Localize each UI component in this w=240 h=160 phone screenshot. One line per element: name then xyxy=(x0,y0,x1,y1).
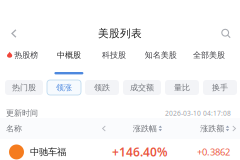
staticText: 热门股 xyxy=(12,83,36,92)
staticText: 中概股 xyxy=(57,50,81,60)
button[interactable]: 中概股 xyxy=(54,45,83,75)
button[interactable]: 换手 xyxy=(203,80,237,95)
staticText: 热股榜 xyxy=(14,50,38,60)
staticText: 涨跌额 xyxy=(200,124,224,133)
staticText: 科技股 xyxy=(102,50,126,60)
staticText: 成交额 xyxy=(130,83,154,92)
staticText: 名称 xyxy=(6,124,22,133)
staticText: 中驰车福 xyxy=(30,146,66,158)
staticText: 全部美股 xyxy=(193,50,225,60)
staticText: 量比 xyxy=(174,83,190,92)
staticText: 换手 xyxy=(212,83,228,92)
staticText: 领跌 xyxy=(94,83,110,92)
button[interactable]: 领涨 xyxy=(47,80,81,95)
button[interactable]: 热门股 xyxy=(5,80,43,95)
staticText: 美股列表 xyxy=(98,27,142,40)
staticText: 更新时间 xyxy=(6,108,38,118)
button[interactable]: 热股榜 xyxy=(7,45,38,75)
staticText: 领涨 xyxy=(56,83,72,92)
button[interactable]: 中驰车福 xyxy=(0,139,240,160)
button[interactable]: 知名美股 xyxy=(145,45,177,75)
button[interactable]: Back xyxy=(4,23,24,43)
button[interactable]: 量比 xyxy=(165,80,199,95)
button[interactable]: Search xyxy=(216,23,236,43)
staticText: 2026-03-10 04:17:08 xyxy=(165,109,231,118)
staticText: 知名美股 xyxy=(145,50,177,60)
button[interactable]: 领跌 xyxy=(85,80,119,95)
button[interactable]: 涨跌额 xyxy=(200,124,229,133)
button[interactable]: 涨跌幅 xyxy=(109,124,162,133)
staticText: +0.3862 xyxy=(197,146,230,158)
staticText: +146.40% xyxy=(112,144,168,160)
button[interactable]: 科技股 xyxy=(100,45,129,75)
staticText: 涨跌幅 xyxy=(133,124,157,133)
button[interactable]: 成交额 xyxy=(123,80,161,95)
button[interactable]: 全部美股 xyxy=(193,45,225,75)
